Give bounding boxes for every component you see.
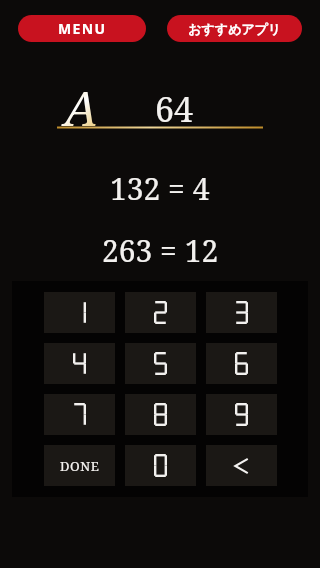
button[interactable]: 4 — [44, 343, 115, 384]
staticText: MENU — [58, 19, 107, 38]
staticText: DONE — [60, 457, 100, 475]
button[interactable]: 5 — [125, 343, 196, 384]
button[interactable]: 1 — [44, 292, 115, 333]
button[interactable]: Backspace — [206, 445, 277, 486]
button[interactable]: 0 — [125, 445, 196, 486]
staticText: 263 = 12 — [102, 230, 219, 271]
button[interactable]: 9 — [206, 394, 277, 435]
button[interactable]: 2 — [125, 292, 196, 333]
button[interactable]: 7 — [44, 394, 115, 435]
button[interactable]: 6 — [206, 343, 277, 384]
button[interactable]: 8 — [125, 394, 196, 435]
staticText: おすすめアプリ — [188, 21, 282, 37]
button[interactable]: MENU — [18, 15, 146, 42]
staticText: 64 — [155, 86, 194, 132]
button[interactable]: おすすめアプリ — [167, 15, 302, 42]
staticText: A — [64, 75, 98, 140]
button[interactable]: 3 — [206, 292, 277, 333]
button[interactable]: DONE — [44, 445, 115, 486]
staticText: 132 = 4 — [110, 168, 210, 209]
